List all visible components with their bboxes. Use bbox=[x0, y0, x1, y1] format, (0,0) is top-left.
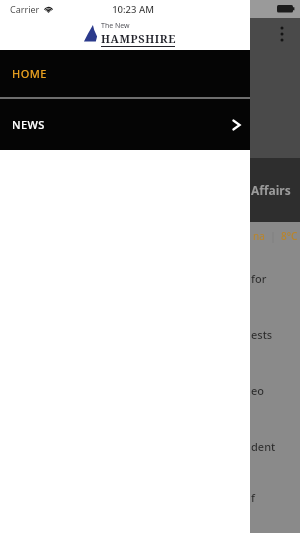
button[interactable]: f bbox=[250, 474, 300, 520]
button[interactable]: eo bbox=[250, 362, 300, 418]
staticText: Affairs bbox=[251, 182, 291, 198]
staticText: 8°C bbox=[281, 229, 298, 243]
staticText: NEWS bbox=[12, 117, 45, 132]
staticText: dent bbox=[251, 439, 276, 454]
button[interactable]: HOME bbox=[0, 50, 250, 97]
button[interactable]: More options bbox=[268, 22, 296, 48]
staticText: eo bbox=[251, 383, 265, 398]
button[interactable]: dent bbox=[250, 418, 300, 474]
staticText: The New bbox=[101, 21, 130, 31]
staticText: Carrier bbox=[10, 3, 40, 15]
staticText: na bbox=[253, 229, 265, 243]
staticText: f bbox=[251, 490, 255, 505]
staticText: 10:23 AM bbox=[112, 3, 154, 16]
staticText: HAMPSHIRE bbox=[101, 31, 176, 46]
staticText: HOME bbox=[12, 66, 47, 81]
button[interactable]: ests bbox=[250, 306, 300, 362]
button[interactable]: NEWS bbox=[0, 99, 250, 150]
staticText: for bbox=[251, 271, 267, 286]
button[interactable]: for bbox=[250, 250, 300, 306]
staticText: ests bbox=[251, 327, 273, 342]
